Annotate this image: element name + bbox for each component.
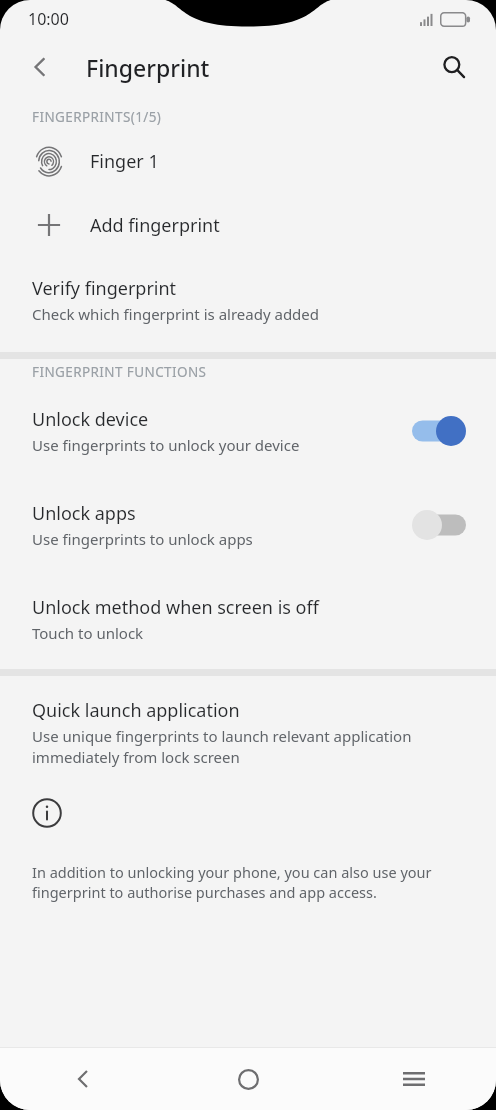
button[interactable]: Unlock method when screen is off: [0, 573, 496, 669]
button[interactable]: Unlock apps: [0, 479, 496, 573]
staticText: In addition to unlocking your phone, you…: [32, 862, 456, 903]
staticText: Unlock device: [32, 407, 149, 432]
staticText: Touch to unlock: [32, 623, 144, 643]
staticText: Use unique fingerprints to launch releva…: [32, 726, 454, 768]
button[interactable]: Toggle on: [412, 416, 466, 446]
staticText: Verify fingerprint: [32, 276, 177, 301]
button[interactable]: Back: [0, 1048, 166, 1110]
staticText: Quick launch application: [32, 698, 240, 723]
staticText: 10:00: [28, 8, 69, 30]
button[interactable]: Add fingerprint: [0, 192, 496, 258]
staticText: FINGERPRINTS(1/5): [32, 108, 162, 126]
staticText: FINGERPRINT FUNCTIONS: [32, 363, 207, 381]
staticText: Unlock apps: [32, 501, 136, 526]
staticText: Fingerprint: [86, 52, 210, 83]
button[interactable]: Unlock device: [0, 385, 496, 479]
button[interactable]: Finger 1: [0, 130, 496, 192]
staticText: Use fingerprints to unlock apps: [32, 529, 253, 549]
button[interactable]: Verify fingerprint: [0, 258, 496, 352]
button[interactable]: Recent apps: [331, 1048, 496, 1110]
button[interactable]: Quick launch application: [0, 676, 496, 778]
staticText: Finger 1: [90, 149, 159, 174]
staticText: Unlock method when screen is off: [32, 595, 319, 620]
staticText: Check which fingerprint is already added: [32, 304, 320, 324]
button[interactable]: Back: [16, 43, 64, 91]
staticText: Use fingerprints to unlock your device: [32, 435, 300, 455]
staticText: Add fingerprint: [90, 213, 220, 238]
button[interactable]: Toggle off: [412, 510, 466, 540]
button[interactable]: Search: [430, 43, 478, 91]
button[interactable]: Home: [166, 1048, 331, 1110]
